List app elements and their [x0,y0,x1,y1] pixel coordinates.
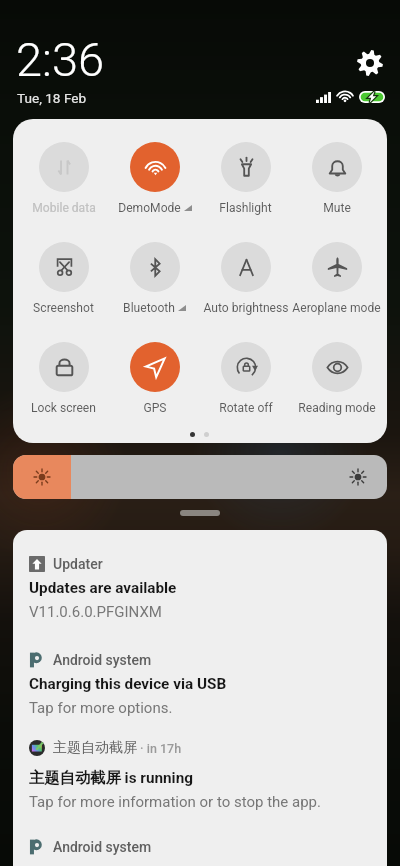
staticText: Aeroplane mode [292,301,381,315]
button[interactable]: Mute [291,142,382,220]
staticText: Tue, 18 Feb [17,90,87,106]
staticText: Reading mode [298,401,376,415]
staticText: Tap for more information or to stop the … [29,793,321,811]
button[interactable]: Lock screen [18,342,109,420]
staticText: Charging this device via USB [29,675,227,693]
button[interactable]: Android system [13,635,387,725]
staticText: 2:36 [16,32,105,87]
button[interactable]: Mobile data [18,142,109,220]
button[interactable]: Brightness [13,455,387,499]
button[interactable]: Aeroplane mode [291,242,382,320]
staticText: Android system [53,839,152,855]
button[interactable]: Flashlight [200,142,291,220]
staticText: 主题自动截屏 is running [29,768,193,787]
staticText: Screenshot [33,301,94,315]
staticText: Mobile data [32,201,96,215]
staticText: Lock screen [31,401,96,415]
button[interactable]: 主题自动截屏 [13,722,387,812]
staticText: 主题自动截屏 [53,739,137,757]
staticText: Auto brightness [203,301,289,315]
button[interactable]: Drag handle [180,510,220,516]
button[interactable]: DemoMode [109,142,200,220]
button[interactable]: Auto brightness [200,242,291,320]
staticText: DemoMode [118,201,181,215]
staticText: Tap for more options. [29,699,173,717]
button[interactable]: Reading mode [291,342,382,420]
staticText: Updates are available [29,579,177,597]
staticText: Flashlight [219,201,272,215]
button[interactable]: GPS [109,342,200,420]
button[interactable]: Updater [13,539,387,629]
staticText: · in 17h [137,741,182,756]
button[interactable]: Rotate off [200,342,291,420]
button[interactable]: Screenshot [18,242,109,320]
button[interactable]: Bluetooth [109,242,200,320]
button[interactable]: Settings [357,50,383,76]
button[interactable]: Android system [13,822,387,866]
staticText: Rotate off [219,401,273,415]
staticText: Bluetooth [123,301,175,315]
staticText: GPS [143,401,167,415]
staticText: Android system [53,652,152,668]
staticText: Updater [53,556,103,572]
staticText: Mute [323,201,351,215]
staticText: V11.0.6.0.PFGINXM [29,603,162,621]
